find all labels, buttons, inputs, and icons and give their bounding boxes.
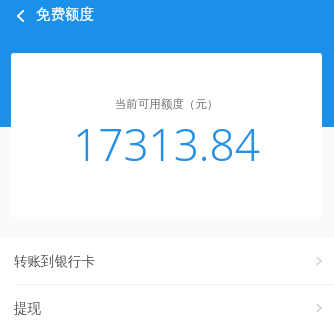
button[interactable]: 提现 [0, 285, 334, 324]
staticText: 转账到银行卡 [14, 253, 95, 270]
button[interactable]: 转账到银行卡 [0, 238, 334, 284]
staticText: 提现 [14, 300, 41, 317]
button[interactable]: Back [6, 1, 36, 31]
staticText: 17313.84 [11, 114, 322, 174]
staticText: 当前可用额度（元） [11, 97, 322, 111]
staticText: 免费额度 [36, 5, 94, 23]
